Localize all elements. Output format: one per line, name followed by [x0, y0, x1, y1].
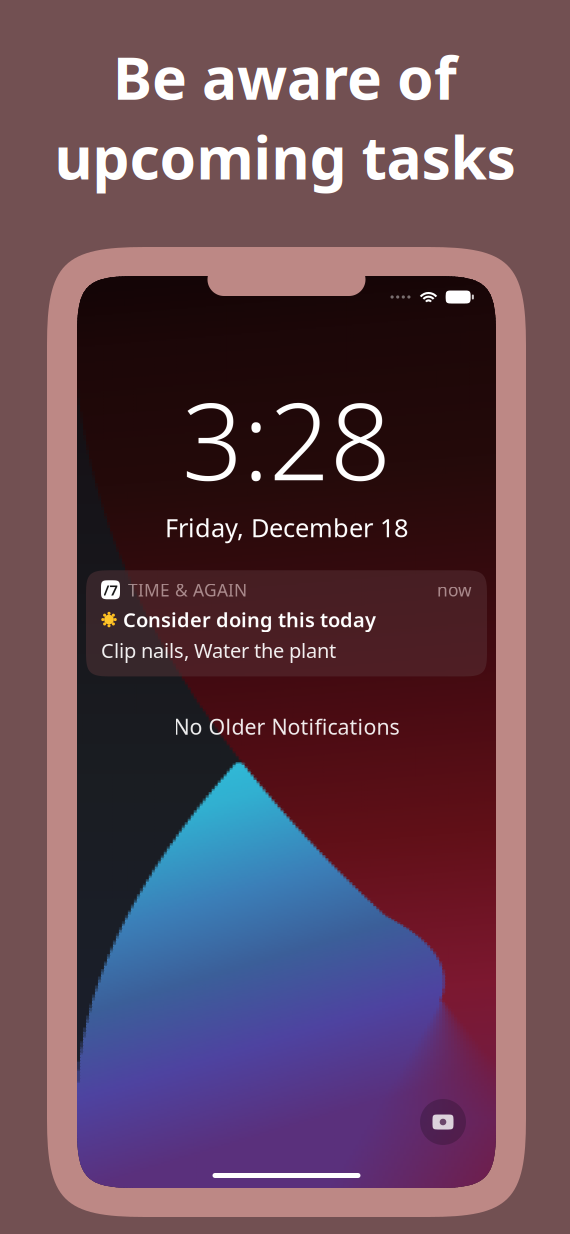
staticText: /7	[103, 580, 117, 600]
staticText: Friday, December 18	[165, 511, 408, 544]
staticText: TIME & AGAIN	[128, 578, 247, 601]
staticText: Clip nails, Water the plant	[101, 637, 336, 663]
button[interactable]: Camera	[420, 1099, 466, 1145]
staticText: Consider doing this today	[123, 606, 376, 633]
staticText: 3:28	[182, 368, 391, 510]
staticText: No Older Notifications	[173, 712, 399, 741]
staticText: Be aware of	[113, 38, 457, 116]
staticText: upcoming tasks	[54, 118, 515, 196]
button[interactable]: /7	[86, 570, 487, 676]
staticText: now	[437, 578, 472, 601]
